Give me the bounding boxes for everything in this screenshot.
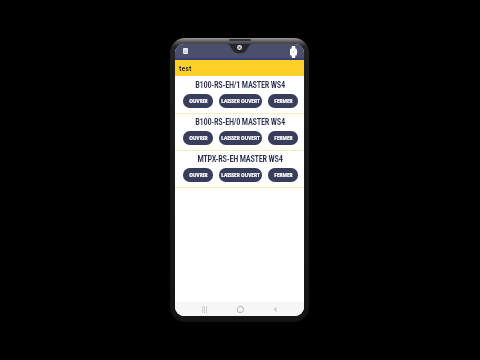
staticText: LAISSER OUVERT <box>221 172 260 178</box>
button[interactable]: Back <box>269 303 281 315</box>
staticText: LAISSER OUVERT <box>221 98 260 104</box>
button[interactable]: OUVRIR <box>183 131 213 145</box>
button[interactable]: LAISSER OUVERT <box>219 94 262 108</box>
button[interactable]: LAISSER OUVERT <box>219 131 262 145</box>
button[interactable]: FERMER <box>268 168 298 182</box>
button[interactable]: FERMER <box>268 131 298 145</box>
staticText: OUVRIR <box>189 98 208 104</box>
button[interactable]: OUVRIR <box>183 94 213 108</box>
button[interactable]: LAISSER OUVERT <box>219 168 262 182</box>
staticText: FERMER <box>274 135 293 141</box>
button[interactable]: FERMER <box>268 94 298 108</box>
staticText: B100-RS-EH/1 MASTER WS4 <box>195 80 285 90</box>
staticText: FERMER <box>274 172 293 178</box>
staticText: test <box>179 64 192 73</box>
staticText: FERMER <box>274 98 293 104</box>
button[interactable]: OUVRIR <box>183 168 213 182</box>
button[interactable]: Home <box>234 303 246 315</box>
staticText: LAISSER OUVERT <box>221 135 260 141</box>
staticText: B100-RS-EH/0 MASTER WS4 <box>195 117 285 127</box>
staticText: MTPX-RS-EH MASTER WS4 <box>197 154 283 164</box>
staticText: OUVRIR <box>189 172 208 178</box>
button[interactable]: Menu <box>179 45 191 57</box>
button[interactable]: Recents <box>198 303 210 315</box>
staticText: OUVRIR <box>189 135 208 141</box>
button[interactable]: Watch <box>287 46 299 58</box>
